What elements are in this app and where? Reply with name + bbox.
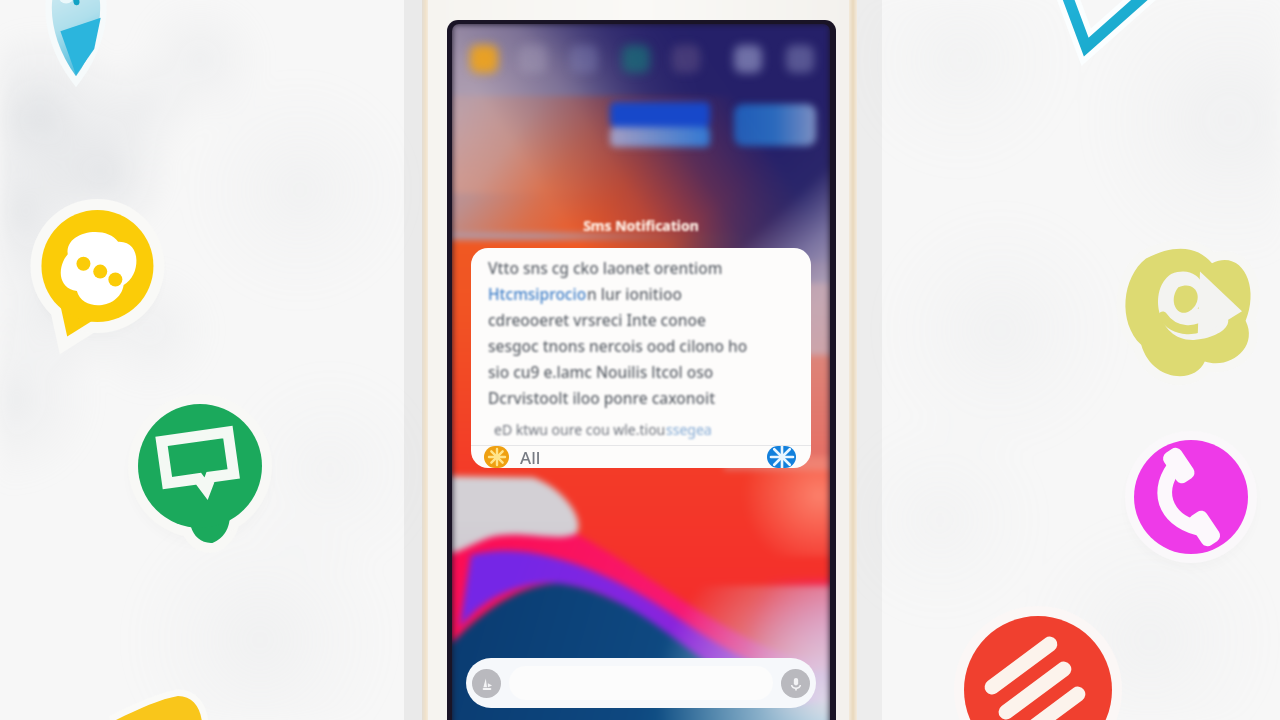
staticText: sesgoc tnons nercois ood cilono ho (488, 335, 748, 356)
staticText: ssegea (666, 420, 712, 439)
button[interactable]: Voice search (781, 669, 810, 698)
staticText: n lur ionitioo (587, 283, 682, 304)
staticText: cdreooeret vrsreci Inte conoe (488, 309, 706, 330)
button[interactable]: Vtto sns cg cko laonet orentiom (471, 248, 811, 468)
button[interactable]: Send (767, 446, 796, 468)
staticText: Vtto sns cg cko laonet orentiom (488, 257, 723, 278)
staticText: Dcrvistoolt iloo ponre caxonoit (488, 387, 716, 408)
button[interactable]: Google Assistant (472, 669, 501, 698)
staticText: Htcmsiprocio (488, 283, 587, 304)
staticText: sio cu9 e.lamc Nouilis ltcol oso (488, 361, 714, 382)
staticText: Sms Notification (452, 216, 830, 235)
staticText: eD ktwu oure cou wle.tiou (494, 420, 666, 439)
staticText: All (520, 446, 541, 468)
button[interactable]: Account (484, 446, 509, 468)
